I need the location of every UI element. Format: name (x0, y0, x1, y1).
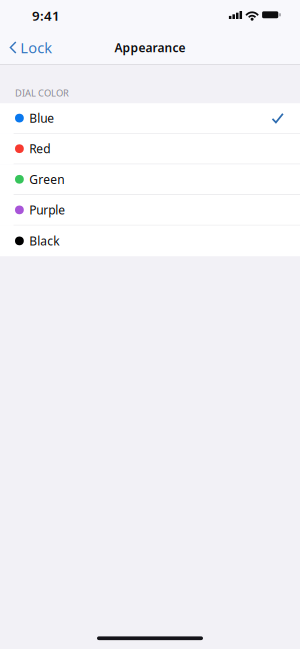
button[interactable]: Black (0, 226, 300, 256)
staticText: Blue (29, 110, 54, 126)
button[interactable]: Blue (0, 103, 300, 134)
staticText: Red (29, 141, 50, 157)
staticText: Purple (29, 202, 65, 218)
staticText: Black (29, 233, 59, 249)
staticText: DIAL COLOR (15, 87, 69, 99)
button[interactable]: Purple (0, 195, 300, 226)
staticText: Green (29, 171, 64, 187)
button[interactable]: Green (0, 164, 300, 195)
staticText: Appearance (114, 39, 185, 55)
button[interactable]: Red (0, 134, 300, 164)
staticText: 9:41 (32, 7, 60, 24)
staticText: Lock (20, 38, 52, 57)
button[interactable]: Lock (0, 31, 62, 64)
